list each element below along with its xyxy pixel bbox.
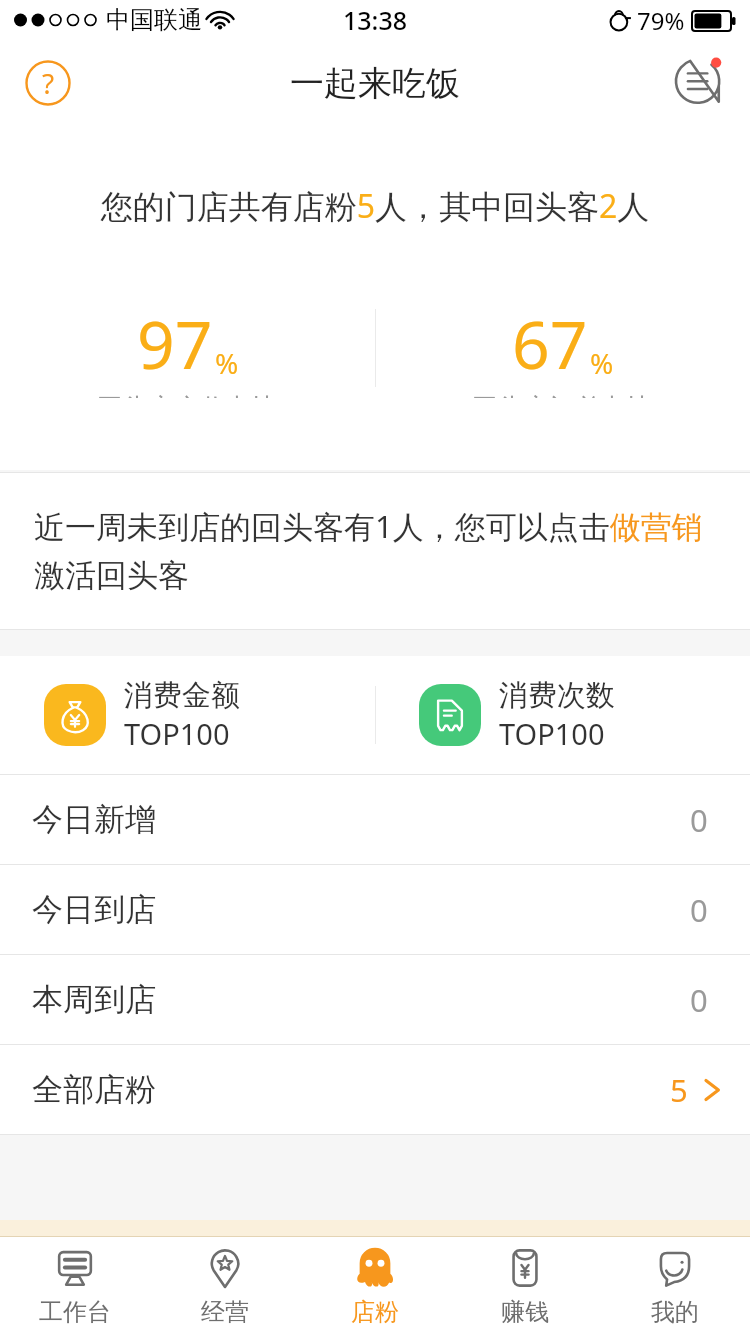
button[interactable]: 消费金额 xyxy=(0,656,375,774)
button[interactable]: 我的 xyxy=(600,1237,750,1334)
staticText: 消费金额 xyxy=(124,677,240,714)
staticText: 中国联通 xyxy=(106,5,202,35)
staticText: 一起来吃饭 xyxy=(290,62,460,105)
staticText: 67 xyxy=(512,298,588,388)
staticText: 回头客实收占比 xyxy=(97,392,279,398)
staticText: 近一周未到店的回头客有1人，您可以点击做营销 激活回头客 xyxy=(34,505,716,595)
staticText: TOP100 xyxy=(124,714,230,753)
button[interactable]: 消费次数 xyxy=(375,656,750,774)
staticText: % xyxy=(590,344,614,382)
button[interactable]: 近一周未到店的回头客有1人，您可以点击做营销 激活回头客 xyxy=(0,472,750,630)
staticText: % xyxy=(215,344,239,382)
button[interactable]: 今日新增 xyxy=(0,775,750,865)
button[interactable]: 赚钱 xyxy=(450,1237,600,1334)
button[interactable]: 本周到店 xyxy=(0,955,750,1045)
staticText: TOP100 xyxy=(499,714,605,753)
button[interactable]: 经营 xyxy=(150,1237,300,1334)
staticText: 工作台 xyxy=(39,1297,111,1327)
button[interactable]: 今日到店 xyxy=(0,865,750,955)
staticText: 店粉 xyxy=(351,1297,399,1327)
staticText: 5 xyxy=(670,1069,688,1111)
staticText: 您的门店共有店粉5人，其中回头客2人 xyxy=(0,184,750,228)
button[interactable]: 全部店粉 xyxy=(0,1045,750,1135)
button[interactable]: 帮助 xyxy=(16,51,80,115)
staticText: 13:38 xyxy=(343,3,408,37)
staticText: 回头客订单占比 xyxy=(472,392,654,398)
staticText: 0 xyxy=(690,889,708,931)
staticText: 今日新增 xyxy=(32,800,156,839)
staticText: 今日到店 xyxy=(32,890,156,929)
button[interactable]: 消息 xyxy=(664,47,736,119)
staticText: 我的 xyxy=(651,1297,699,1327)
staticText: 0 xyxy=(690,799,708,841)
staticText: 本周到店 xyxy=(32,980,156,1019)
staticText: 97 xyxy=(137,298,213,388)
staticText: ? xyxy=(42,64,55,102)
staticText: 79% xyxy=(637,4,685,37)
button[interactable]: 店粉 xyxy=(300,1237,450,1334)
staticText: 赚钱 xyxy=(501,1297,549,1327)
staticText: 0 xyxy=(690,979,708,1021)
staticText: 消费次数 xyxy=(499,677,615,714)
staticText: 经营 xyxy=(201,1297,249,1327)
button[interactable]: 工作台 xyxy=(0,1237,150,1334)
staticText: 全部店粉 xyxy=(32,1070,156,1109)
